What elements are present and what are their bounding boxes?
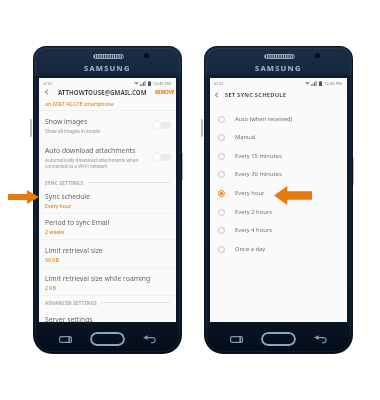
button[interactable]: Home [261, 332, 296, 346]
button[interactable]: Recent apps [230, 336, 243, 343]
staticText: ADVANCED SETTINGS [45, 300, 97, 306]
button[interactable]: Show images [45, 117, 170, 143]
staticText: SET SYNC SCHEDULE [225, 91, 287, 99]
button[interactable]: Back [314, 336, 327, 343]
button[interactable]: Period to sync Email [45, 218, 170, 235]
staticText: 50 KB [45, 256, 59, 263]
staticText: an AT&T 4G LTE smartphone [45, 100, 114, 107]
staticText: ATTHOWTOUSE@GMAIL.COM [58, 88, 147, 96]
staticText: SAMSUNG [84, 63, 131, 73]
staticText: Every 15 minutes [235, 152, 282, 160]
staticText: Every hour [235, 189, 265, 197]
staticText: REMOVE [155, 89, 175, 95]
staticText: Every 2 hours [235, 208, 272, 216]
staticText: Limit retrieval size while roaming [45, 274, 151, 283]
button[interactable]: Once a day [218, 240, 347, 258]
staticText: Every hour [45, 202, 72, 209]
button[interactable]: Every hour [218, 184, 347, 202]
button[interactable]: Back [143, 336, 156, 343]
button[interactable]: Toggle [152, 120, 171, 130]
staticText: 12:45 PM [153, 81, 172, 87]
staticText: Automatically download attachments when … [45, 157, 139, 169]
button[interactable]: Every 15 minutes [218, 147, 347, 165]
button[interactable]: Every 4 hours [218, 221, 347, 239]
staticText: Limit retrieval size [45, 246, 103, 255]
staticText: Manual [235, 133, 256, 141]
other: Navigate up [43, 88, 51, 96]
button[interactable]: Every 30 minutes [218, 165, 347, 183]
staticText: 2 weeks [45, 228, 65, 235]
button[interactable]: Server settings [45, 312, 176, 326]
staticText: SYNC SETTINGS [45, 180, 84, 186]
button[interactable]: Limit retrieval size while roaming [45, 274, 170, 291]
staticText: Sync schedule [45, 192, 90, 201]
button[interactable]: Home [90, 332, 125, 346]
button[interactable]: Sync schedule [45, 192, 170, 209]
staticText: Every 4 hours [235, 226, 272, 234]
button[interactable]: Every 2 hours [218, 203, 347, 221]
button[interactable]: Auto download attachments [45, 146, 148, 176]
button[interactable]: Navigate up [213, 88, 347, 102]
staticText: 2 KB [45, 284, 56, 291]
staticText: AT&T [214, 81, 224, 87]
other: Navigate up [213, 91, 221, 99]
button[interactable]: Manual [218, 128, 347, 146]
staticText: Show images [45, 117, 88, 126]
staticText: 12:45 PM [324, 81, 343, 87]
staticText: SAMSUNG [255, 63, 302, 73]
button[interactable]: Recent apps [59, 336, 72, 343]
staticText: Once a day [235, 245, 266, 253]
button[interactable]: Navigate up [39, 86, 176, 100]
staticText: Period to sync Email [45, 218, 110, 227]
button[interactable]: Limit retrieval size [45, 246, 170, 263]
button[interactable]: Auto (when received) [218, 110, 347, 128]
staticText: Every 30 minutes [235, 170, 282, 178]
staticText: Auto (when received) [235, 115, 293, 123]
staticText: Server settings [45, 315, 93, 324]
staticText: AT&T [43, 81, 53, 87]
staticText: Auto download attachments [45, 146, 136, 155]
staticText: Show all images in emails [45, 128, 101, 134]
button[interactable]: Toggle [152, 152, 171, 162]
